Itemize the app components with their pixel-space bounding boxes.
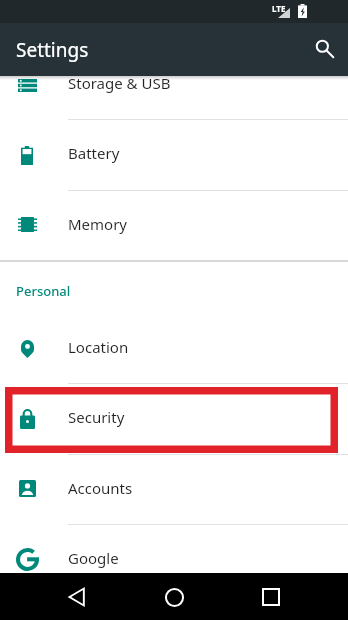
staticText: Storage & USB <box>68 73 171 93</box>
button[interactable]: Home <box>152 575 196 619</box>
staticText: Accounts <box>68 478 133 498</box>
button[interactable]: Accounts <box>0 454 348 525</box>
button[interactable]: Memory <box>0 190 348 261</box>
button[interactable]: Search <box>303 28 347 72</box>
button[interactable]: Security <box>0 383 348 454</box>
button[interactable]: Google <box>0 524 348 595</box>
button[interactable]: Recent apps <box>249 575 293 619</box>
button[interactable]: Storage & USB <box>0 49 348 120</box>
staticText: Security <box>68 407 125 427</box>
button[interactable]: Location <box>0 313 348 384</box>
staticText: Memory <box>68 214 128 234</box>
button[interactable]: Battery <box>0 119 348 190</box>
staticText: Personal <box>16 282 71 300</box>
staticText: Google <box>68 548 119 568</box>
staticText: LTE <box>272 3 286 14</box>
staticText: Settings <box>16 37 89 63</box>
staticText: Battery <box>68 143 120 163</box>
button[interactable]: Back <box>55 575 99 619</box>
staticText: Location <box>68 337 129 357</box>
